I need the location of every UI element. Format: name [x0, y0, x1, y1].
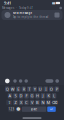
button[interactable]: 123 [8, 106, 15, 112]
button[interactable]: X [19, 100, 23, 105]
staticText: U [39, 86, 42, 92]
staticText: G [30, 93, 33, 98]
button[interactable]: ↵ [47, 106, 56, 112]
button[interactable]: G [30, 93, 34, 98]
staticText: Z [14, 100, 16, 105]
button[interactable]: Send [55, 79, 59, 83]
staticText: B [36, 100, 39, 105]
staticText: ☻ [16, 107, 20, 111]
button[interactable]: App [12, 79, 18, 83]
button[interactable]: A [8, 93, 12, 98]
button[interactable]: L [52, 93, 56, 98]
button[interactable]: App [23, 79, 29, 83]
button[interactable]: I [43, 86, 48, 92]
button[interactable]: ⌫ [52, 100, 58, 105]
button[interactable]: More [59, 7, 62, 9]
staticText: S [14, 93, 16, 98]
button[interactable]: V [30, 100, 34, 105]
staticText: F [25, 93, 27, 98]
button[interactable]: C [24, 100, 29, 105]
button[interactable]: K [46, 93, 51, 98]
button[interactable]: ☻ [16, 106, 21, 112]
staticText: C [25, 100, 28, 105]
staticText: R [23, 86, 25, 92]
button[interactable]: Camera [5, 79, 10, 83]
staticText: D [19, 93, 22, 98]
staticText: 123 [9, 107, 15, 111]
button[interactable]: App [18, 79, 23, 83]
staticText: New message [12, 11, 32, 15]
button[interactable]: D [19, 93, 23, 98]
button[interactable]: Y [32, 86, 37, 92]
staticText: M [46, 100, 50, 105]
button[interactable]: H [35, 93, 40, 98]
button[interactable]: R [21, 86, 26, 92]
button[interactable]: New message [0, 10, 64, 20]
staticText: L [53, 93, 55, 98]
staticText: Q [6, 86, 9, 92]
staticText: H [36, 93, 39, 98]
button[interactable]: B [35, 100, 40, 105]
staticText: ⌫ [52, 100, 58, 105]
button[interactable]: P [54, 86, 59, 92]
staticText: Tap to reply to the thread [12, 15, 48, 19]
staticText: N [41, 100, 44, 105]
button[interactable]: U [38, 86, 42, 92]
button[interactable]: Q [5, 86, 9, 92]
button[interactable]: O [49, 86, 53, 92]
staticText: ↵ [50, 107, 53, 111]
button[interactable]: Z [13, 100, 18, 105]
staticText: P [56, 86, 58, 92]
button[interactable]: E [16, 86, 20, 92]
button[interactable]: W [10, 86, 15, 92]
button[interactable]: space [22, 106, 46, 112]
staticText: O [50, 86, 53, 92]
button[interactable]: N [41, 100, 45, 105]
button[interactable]: ⇧ [6, 100, 12, 105]
staticText: ▮▮▮ [52, 1, 55, 4]
button[interactable]: Messages · Today 9:41 [2, 6, 34, 10]
staticText: space [31, 107, 38, 111]
button[interactable]: J [41, 93, 45, 98]
staticText: I [45, 86, 46, 92]
staticText: 9:41 [4, 0, 11, 6]
staticText: E [17, 86, 19, 92]
staticText: J [42, 93, 43, 98]
staticText: K [47, 93, 49, 98]
button[interactable]: M [46, 100, 51, 105]
staticText: A [8, 93, 11, 98]
button[interactable]: Message field [45, 79, 53, 83]
staticText: ⇧ [8, 100, 11, 105]
staticText: Messages · Today 9:41 [2, 6, 34, 10]
staticText: X [20, 100, 22, 105]
button[interactable]: S [13, 93, 18, 98]
staticText: Y [34, 86, 36, 92]
staticText: V [31, 100, 33, 105]
staticText: T [28, 86, 30, 92]
button[interactable]: T [27, 86, 31, 92]
staticText: W [11, 86, 15, 92]
button[interactable]: F [24, 93, 29, 98]
